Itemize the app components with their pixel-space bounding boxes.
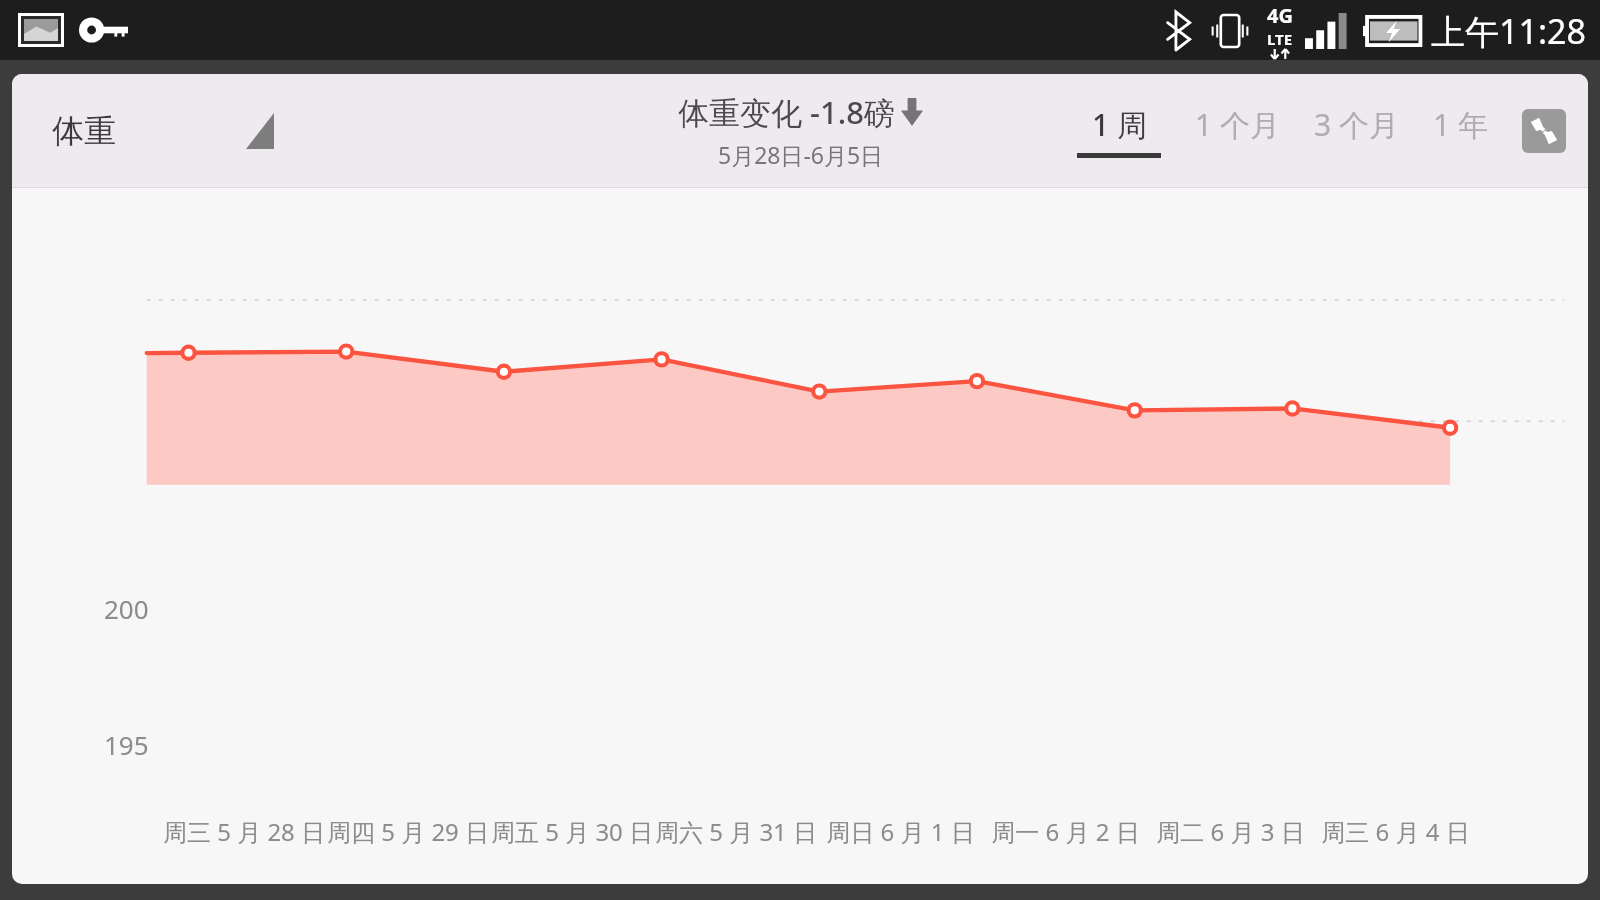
- staticText: 周日 6 月 1 日: [818, 815, 983, 848]
- staticText: 200: [104, 591, 149, 626]
- staticText: 周五 5 月 30 日: [490, 815, 654, 848]
- staticText: 1 周: [1092, 104, 1147, 145]
- staticText: 周一 6 月 2 日: [983, 815, 1148, 848]
- staticText: 1 个月: [1195, 104, 1280, 145]
- staticText: 周三 5 月 28 日: [162, 815, 326, 848]
- staticText: LTE: [1267, 29, 1293, 49]
- staticText: 4G: [1267, 2, 1293, 29]
- staticText: 上午11:28: [1431, 8, 1586, 54]
- button[interactable]: 3 个月: [1310, 100, 1403, 162]
- staticText: 195: [104, 727, 149, 762]
- staticText: 周六 5 月 31 日: [654, 815, 818, 848]
- button[interactable]: 1 周: [1073, 100, 1165, 162]
- staticText: 周三 6 月 4 日: [1313, 815, 1478, 848]
- button[interactable]: 1 年: [1429, 100, 1492, 162]
- staticText: 体重: [52, 111, 116, 151]
- staticText: 周二 6 月 3 日: [1148, 815, 1313, 848]
- button[interactable]: Collapse chart: [1522, 109, 1566, 153]
- staticText: 周四 5 月 29 日: [326, 815, 490, 848]
- staticText: 体重变化 -1.8磅: [678, 91, 895, 133]
- button[interactable]: 1 个月: [1191, 100, 1284, 162]
- staticText: 1 年: [1433, 104, 1488, 145]
- button[interactable]: 体重: [12, 74, 292, 187]
- staticText: 5月28日-6月5日: [718, 139, 884, 170]
- staticText: 3 个月: [1314, 104, 1399, 145]
